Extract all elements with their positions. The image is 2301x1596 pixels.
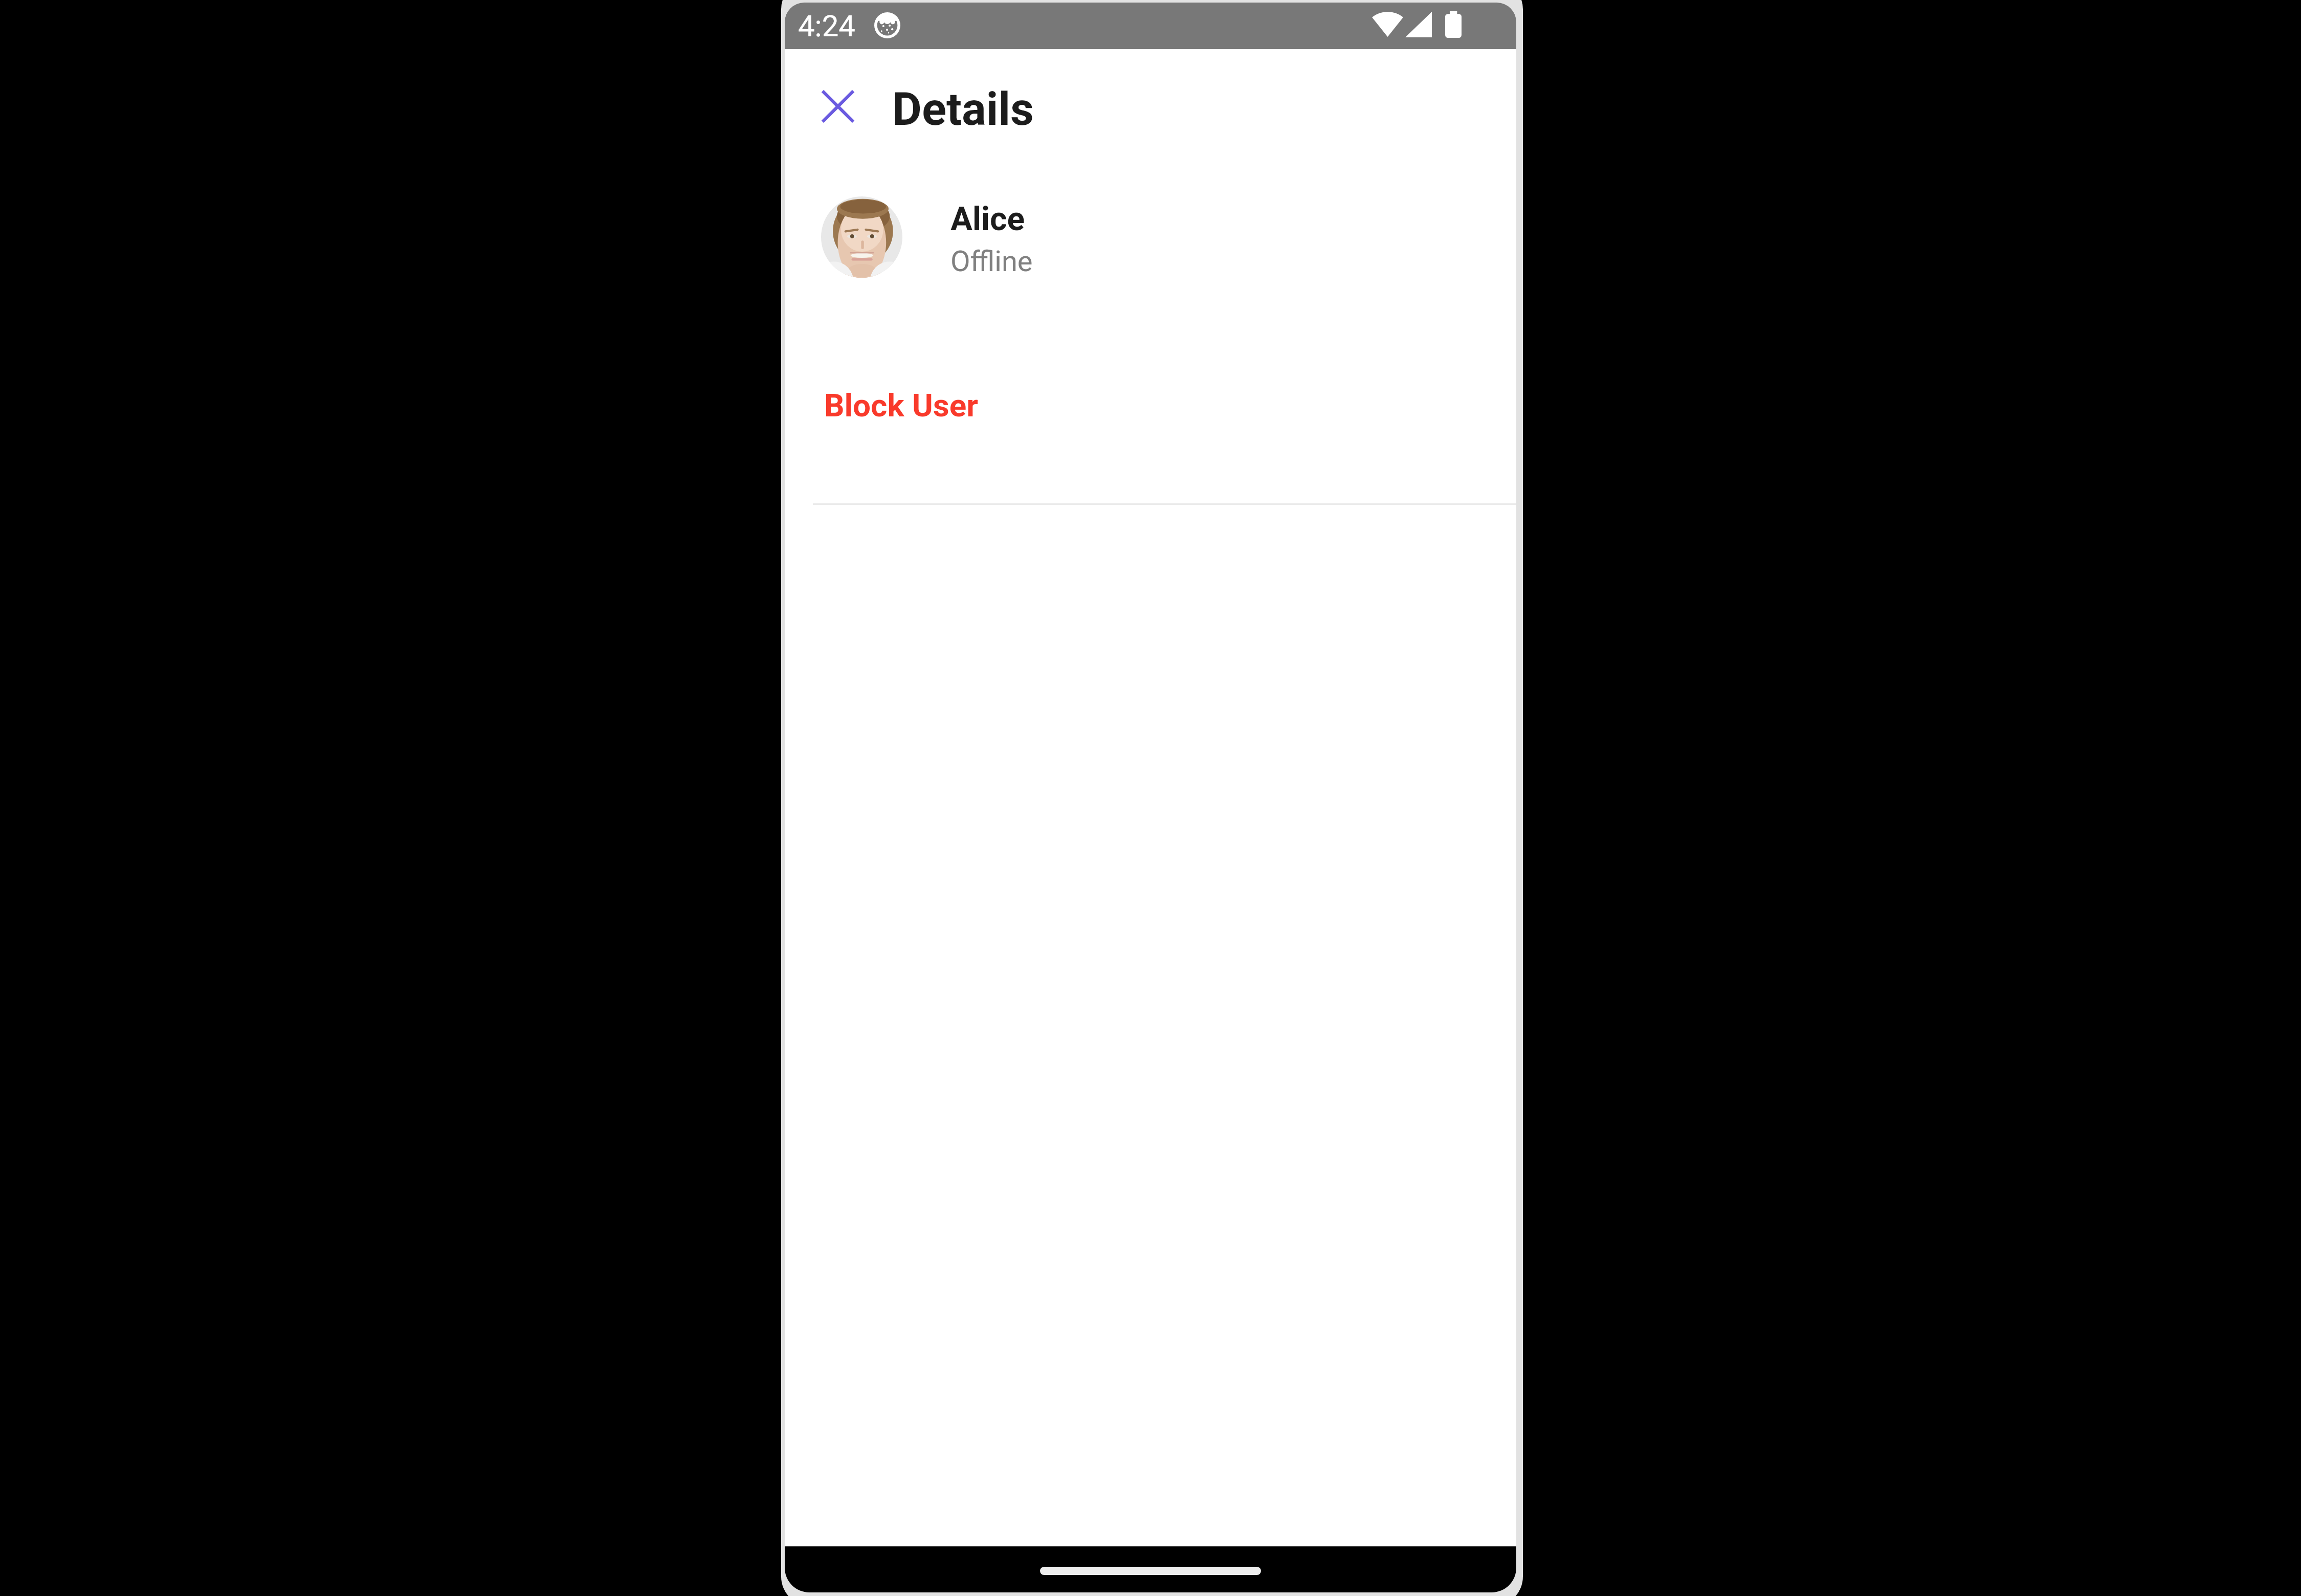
button[interactable]: Alice [785,169,1516,312]
staticText: Alice [950,200,1025,238]
staticText: 4:24 [798,9,855,43]
button[interactable]: Block User [785,348,1516,465]
staticText: Offline [950,245,1033,278]
button[interactable]: Close [813,82,862,131]
staticText: Details [892,82,1034,136]
staticText: Block User [824,387,978,424]
